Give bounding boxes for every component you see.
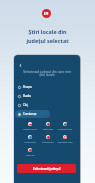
- button[interactable]: Selectează județul: [17, 164, 76, 173]
- button[interactable]: Copiere Link: [21, 122, 39, 132]
- staticText: Cere de Constanța: [21, 153, 39, 156]
- staticText: Aplicația FIPS: [56, 140, 74, 143]
- staticText: Brașov: [23, 85, 32, 89]
- button[interactable]: Back: [16, 61, 24, 69]
- button[interactable]: Buzău: [15, 92, 50, 100]
- button[interactable]: Cere de Constanța: [21, 148, 39, 158]
- button[interactable]: Aplicația FIPS: [56, 135, 74, 145]
- staticText: Selectează județul din care vrei știri l…: [14, 69, 80, 77]
- staticText: Instagram: [39, 140, 57, 143]
- button[interactable]: Instagram: [39, 135, 57, 145]
- staticText: WhatsApp: [21, 140, 39, 143]
- staticText: Știri locale din județul selectat: [0, 28, 95, 44]
- button[interactable]: Trimite Poza: [56, 122, 74, 132]
- button[interactable]: Cluj: [15, 101, 50, 109]
- staticText: Raportez: [39, 127, 57, 130]
- staticText: Constanța: [23, 112, 37, 116]
- staticText: Cluj: [23, 103, 28, 107]
- button[interactable]: Logo: [42, 9, 51, 18]
- staticText: Buzău: [23, 94, 32, 98]
- button[interactable]: WhatsApp: [21, 135, 39, 145]
- staticText: Selectează județul: [33, 167, 61, 171]
- button[interactable]: Brașov: [15, 83, 50, 91]
- staticText: Copiere Link: [21, 127, 39, 130]
- button[interactable]: Constanța: [15, 110, 50, 118]
- staticText: Trimite Poza: [56, 127, 74, 130]
- button[interactable]: Raportez: [39, 122, 57, 132]
